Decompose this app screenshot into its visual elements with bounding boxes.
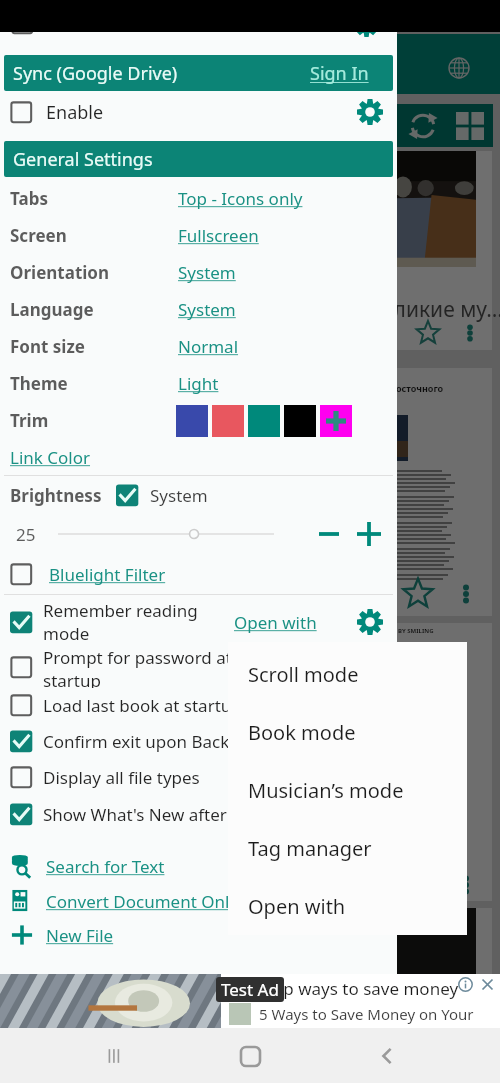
- other: More options: [456, 584, 476, 604]
- button[interactable]: Open with: [234, 611, 317, 634]
- staticText: Scroll mode: [248, 661, 359, 688]
- staticText: Top - Icons only: [178, 187, 303, 210]
- staticText: Trim: [10, 409, 49, 432]
- staticText: Theme: [10, 372, 68, 395]
- staticText: Orientation: [10, 261, 110, 284]
- staticText: Tag manager: [248, 835, 372, 862]
- staticText: ема: ракета с Восточного: [326, 382, 444, 394]
- staticText: Tabs: [10, 187, 48, 210]
- staticText: Language: [10, 298, 94, 321]
- button[interactable]: Theme: [0, 365, 397, 402]
- staticText: Enable: [46, 100, 104, 125]
- staticText: еликие му…: [382, 295, 500, 324]
- button[interactable]: Convert Document Online: [0, 889, 254, 913]
- button[interactable]: Confirm exit upon Back: [0, 730, 295, 753]
- button[interactable]: Search for Text: [0, 854, 165, 878]
- button[interactable]: Decrease brightness: [313, 518, 345, 550]
- staticText: Font size: [10, 335, 85, 358]
- button[interactable]: Home: [227, 1033, 273, 1079]
- staticText: Musician’s mode: [248, 777, 404, 804]
- staticText: Screen: [10, 224, 67, 247]
- staticText: System: [150, 484, 208, 507]
- staticText: Test Ad: [221, 978, 279, 1001]
- button[interactable]: Brightness slider: [58, 524, 274, 544]
- staticText: System: [178, 261, 236, 284]
- staticText: BY SMILING: [398, 627, 434, 635]
- button[interactable]: Language: [0, 291, 397, 328]
- button[interactable]: Font size: [0, 328, 397, 365]
- staticText: 25: [16, 523, 36, 546]
- staticText: General Settings: [13, 147, 153, 172]
- button[interactable]: Tag manager: [228, 819, 467, 877]
- staticText: Normal: [178, 335, 239, 358]
- button[interactable]: Bluelight Filter: [0, 554, 397, 594]
- staticText: Bluelight Filter: [49, 563, 166, 586]
- other: Refresh: [408, 111, 438, 141]
- other: Web: [448, 57, 470, 79]
- staticText: Open with: [248, 893, 346, 920]
- other: Favourite: [416, 321, 440, 345]
- staticText: Prompt for password at startup: [43, 646, 265, 688]
- staticText: Convert Document Online: [46, 890, 254, 913]
- staticText: Confirm exit upon Back: [43, 730, 295, 753]
- staticText: рном осталась: [326, 396, 395, 408]
- other: Grid view: [456, 112, 484, 140]
- button[interactable]: [116, 484, 139, 507]
- staticText: Search for Text: [46, 855, 165, 878]
- button[interactable]: Enable: [0, 91, 397, 133]
- button[interactable]: Back: [364, 1033, 410, 1079]
- staticText: Fullscreen: [178, 224, 259, 247]
- staticText: Show What's New after update: [43, 803, 295, 826]
- button[interactable]: New File: [0, 923, 114, 947]
- button[interactable]: Link Color: [10, 446, 91, 469]
- other: More options: [461, 324, 479, 342]
- button[interactable]: Display all file types: [0, 766, 295, 789]
- button[interactable]: Screen: [0, 217, 397, 254]
- button[interactable]: General Settings: [4, 141, 393, 177]
- button[interactable]: Show What's New after update: [0, 803, 295, 826]
- staticText: op ways to save money: [273, 977, 459, 1000]
- button[interactable]: op ways to save money: [0, 974, 500, 1028]
- button[interactable]: Scroll mode: [228, 646, 467, 703]
- staticText: 5 Ways to Save Money on Your Auto: [259, 1004, 500, 1024]
- staticText: System: [178, 298, 236, 321]
- other: Favourite: [402, 578, 434, 610]
- staticText: Remember reading mode: [43, 599, 230, 645]
- staticText: New File: [46, 924, 114, 947]
- button[interactable]: Prompt for password at startup: [0, 646, 265, 688]
- button[interactable]: Book mode: [228, 703, 467, 761]
- staticText: Light: [178, 372, 219, 395]
- button[interactable]: Recent apps: [91, 1033, 137, 1079]
- staticText: Load last book at startup: [43, 694, 295, 717]
- button[interactable]: Add colour: [320, 405, 352, 437]
- other: Close ad: [480, 977, 495, 992]
- button[interactable]: Load last book at startup: [0, 694, 295, 717]
- staticText: Sync (Google Drive): [13, 61, 178, 86]
- button[interactable]: Remember reading mode: [0, 599, 230, 645]
- staticText: Brightness: [10, 484, 102, 507]
- button[interactable]: Musician’s mode: [228, 761, 467, 819]
- button[interactable]: Open with: [228, 877, 467, 935]
- button[interactable]: Orientation: [0, 254, 397, 291]
- staticText: Book mode: [248, 719, 356, 746]
- button[interactable]: Sync (Google Drive): [4, 55, 393, 91]
- staticText: Display all file types: [43, 766, 295, 789]
- button[interactable]: Increase brightness: [353, 518, 385, 550]
- staticText: Sign In: [310, 61, 369, 86]
- button[interactable]: Tabs: [0, 180, 397, 217]
